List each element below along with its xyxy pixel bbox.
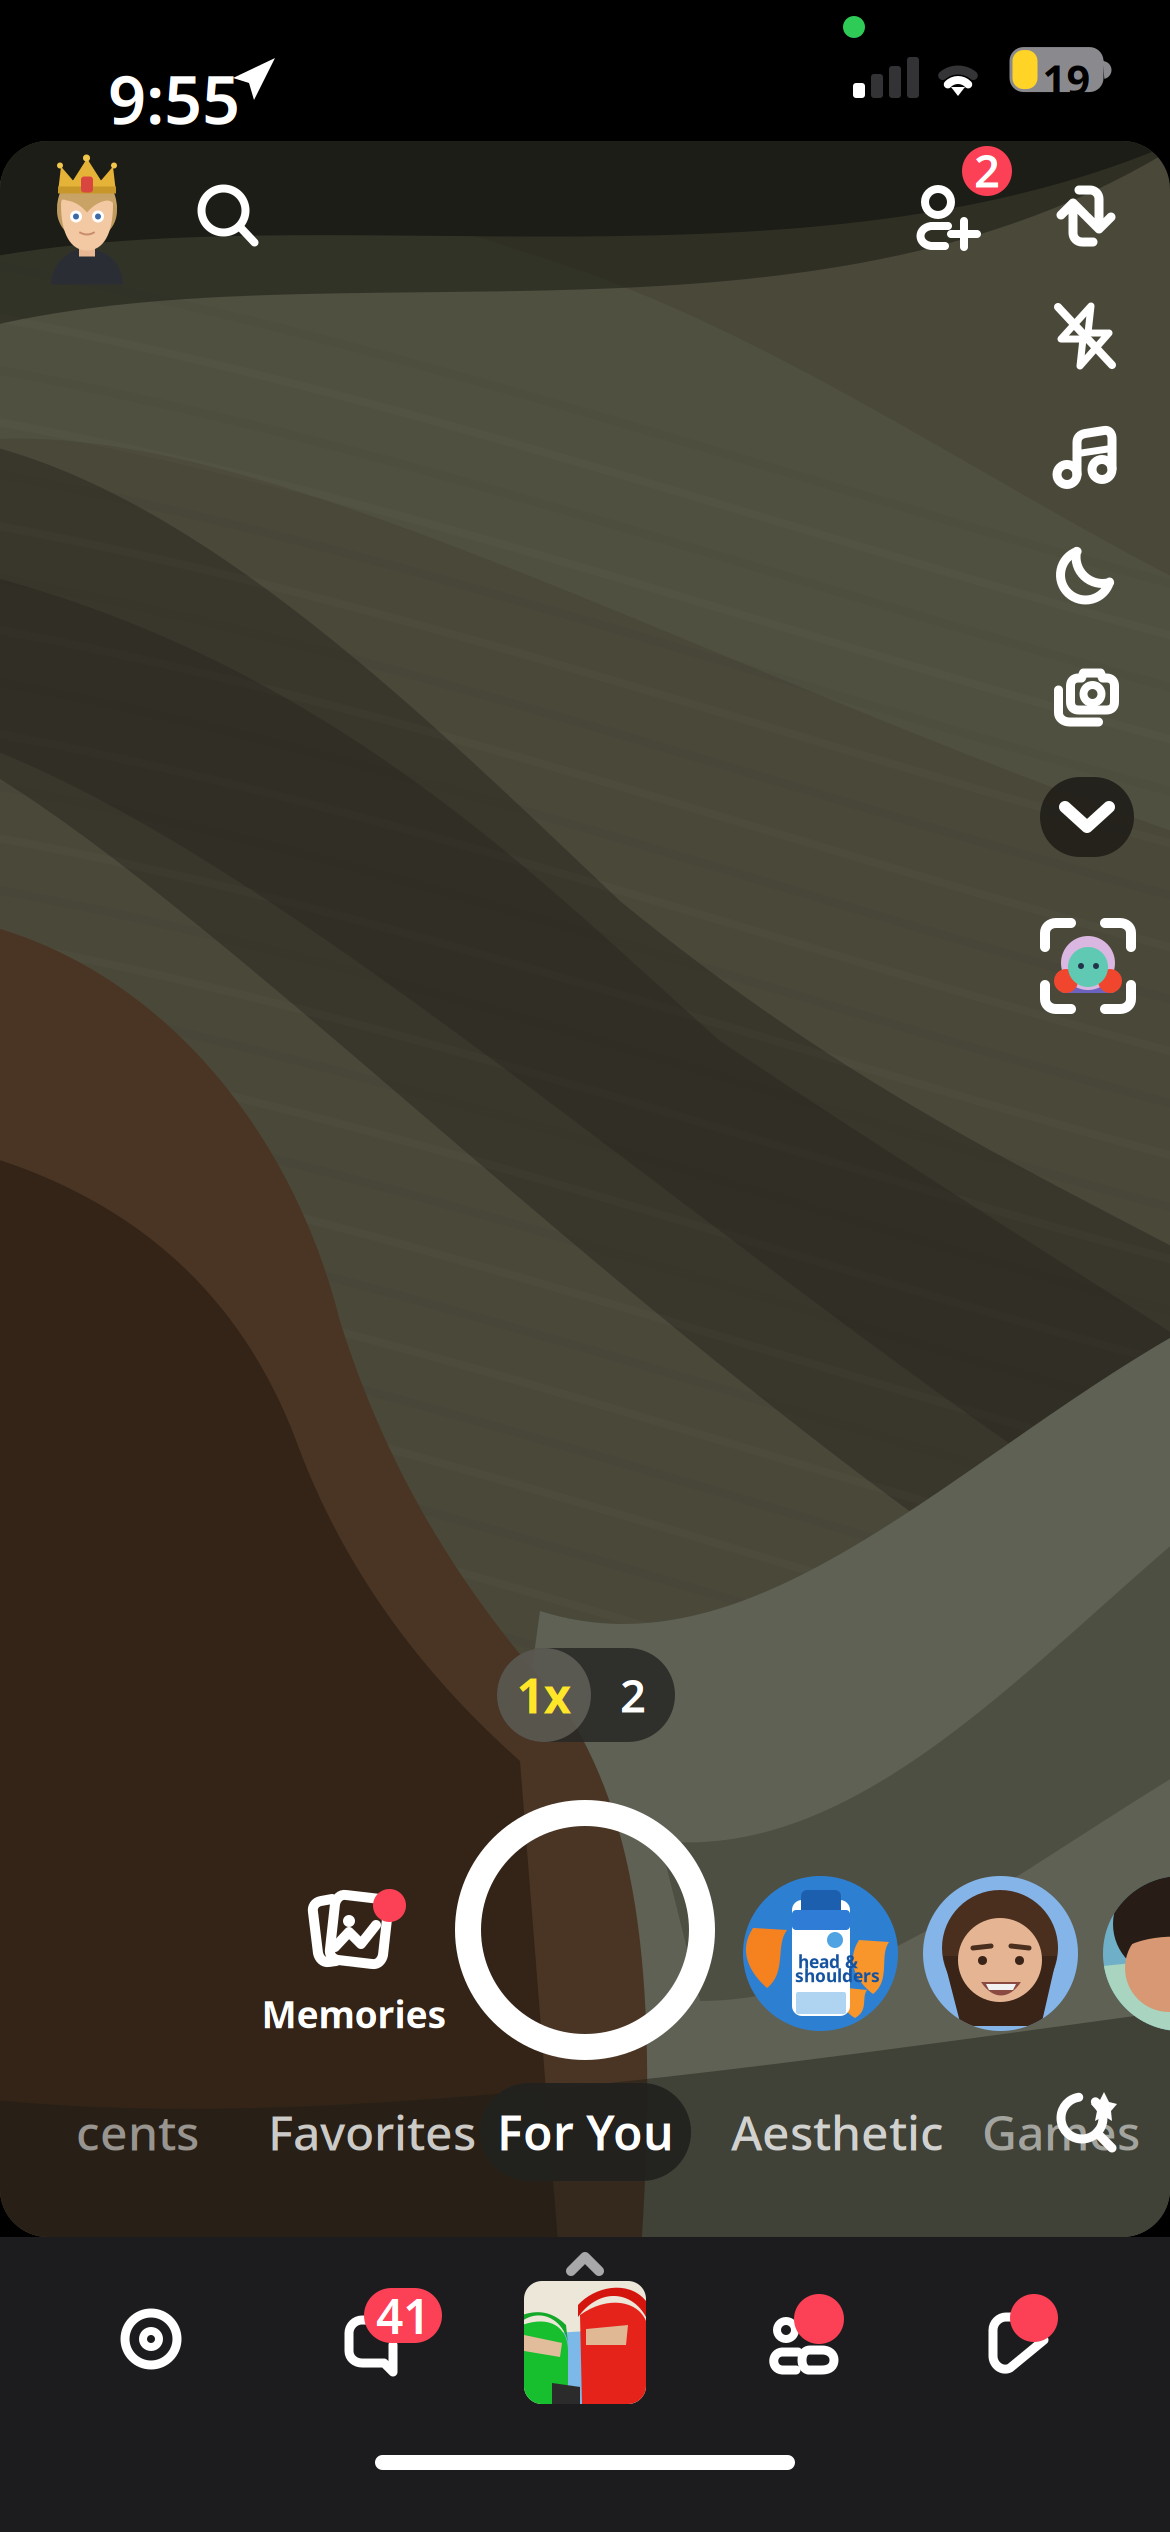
button[interactable]: Search Lenses bbox=[1037, 2071, 1137, 2171]
button[interactable]: Chat bbox=[344, 2288, 474, 2408]
button[interactable]: Zoom bbox=[497, 1648, 675, 1742]
staticText: shoulders bbox=[795, 1964, 880, 1987]
button[interactable]: Spotlight bbox=[988, 2294, 1098, 2404]
staticText: 41 bbox=[376, 2284, 430, 2347]
staticText: For You bbox=[497, 2100, 674, 2164]
button[interactable]: Lens 1 bbox=[743, 1876, 898, 2031]
button[interactable]: Profile bbox=[31, 150, 143, 280]
button[interactable]: Scan bbox=[1033, 911, 1143, 1021]
button[interactable]: Flash Off bbox=[1030, 281, 1140, 391]
button[interactable]: Night Mode bbox=[1031, 520, 1141, 630]
button[interactable]: Memories bbox=[244, 1887, 464, 2037]
staticText: Favorites bbox=[268, 2100, 476, 2164]
button[interactable]: More bbox=[1040, 777, 1134, 857]
button[interactable]: Camera bbox=[524, 2281, 646, 2404]
staticText: cents bbox=[76, 2100, 199, 2164]
button[interactable]: Multi Snap bbox=[1031, 641, 1141, 751]
staticText: head & bbox=[798, 1950, 858, 1973]
button[interactable]: Music bbox=[1032, 400, 1142, 510]
staticText: 2 bbox=[974, 140, 1000, 200]
button[interactable]: Flip Camera bbox=[1031, 161, 1141, 271]
button[interactable]: Search bbox=[173, 161, 283, 271]
staticText: Aesthetic bbox=[731, 2100, 944, 2164]
staticText: Games bbox=[982, 2100, 1140, 2164]
button[interactable]: cents bbox=[76, 2082, 226, 2182]
staticText: 2 bbox=[620, 1665, 646, 1725]
button[interactable]: Lens 2 bbox=[923, 1876, 1078, 2031]
button[interactable]: Games bbox=[982, 2082, 1142, 2182]
staticText: 19 bbox=[1042, 52, 1090, 107]
staticText: Memories bbox=[261, 1989, 446, 2039]
button[interactable]: Favorites bbox=[268, 2082, 468, 2182]
button[interactable]: For You bbox=[480, 2083, 691, 2181]
button[interactable]: Capture bbox=[455, 1800, 715, 2060]
button[interactable]: Add Friends bbox=[912, 146, 1022, 258]
button[interactable]: Lens 3 bbox=[1103, 1876, 1170, 2031]
button[interactable]: Aesthetic bbox=[731, 2082, 941, 2182]
button[interactable]: Friends bbox=[768, 2294, 888, 2404]
staticText: 9:55 bbox=[108, 54, 240, 142]
staticText: 1x bbox=[516, 1663, 571, 1727]
button[interactable]: Map bbox=[120, 2308, 230, 2418]
